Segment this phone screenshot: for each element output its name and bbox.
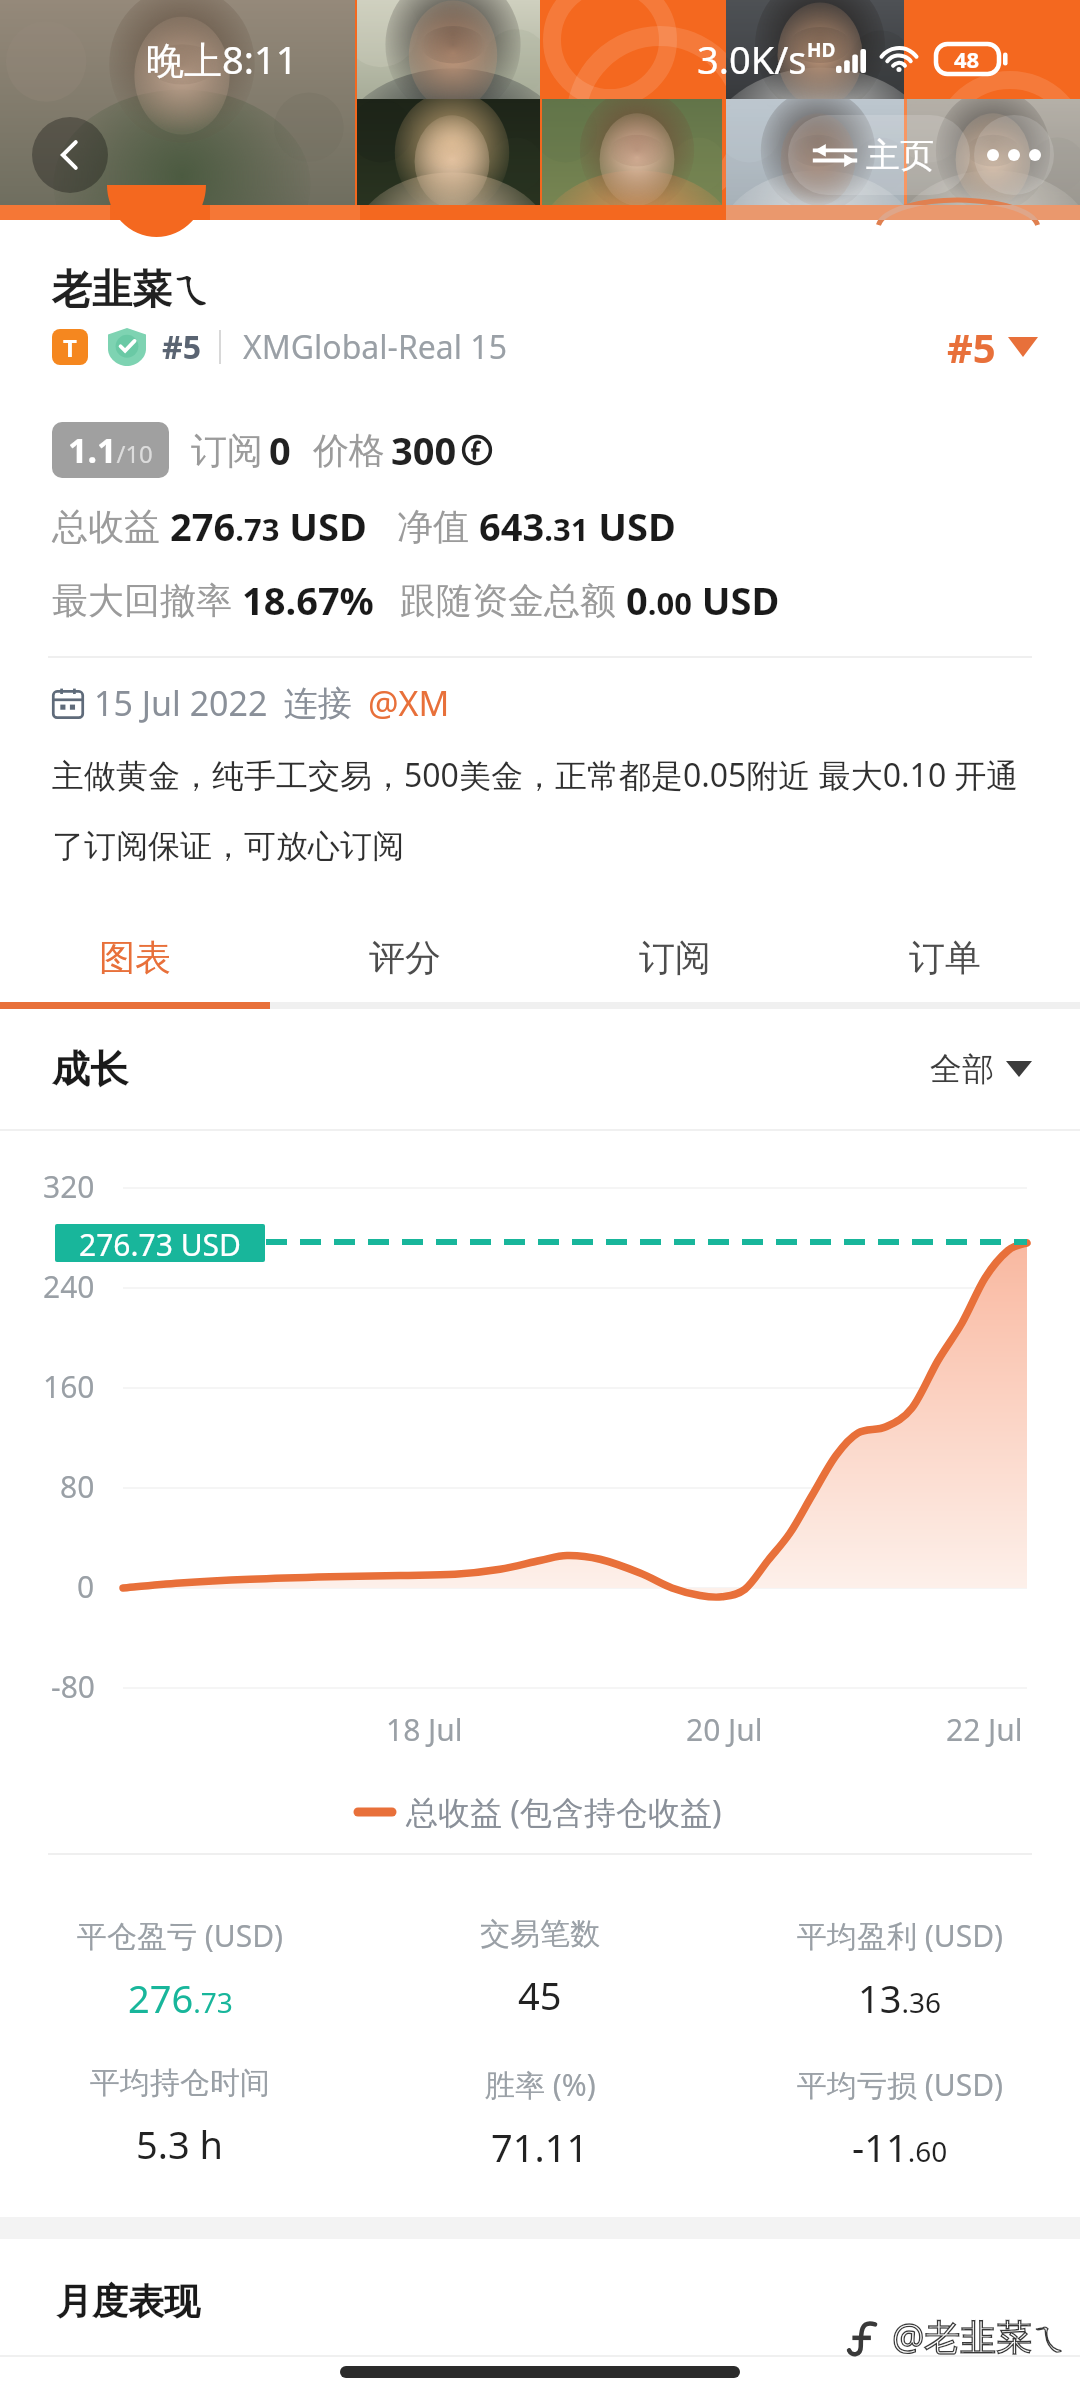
staticText: 平仓盈亏 (USD) bbox=[77, 1915, 284, 1956]
staticText: 13.36 bbox=[858, 1972, 942, 2024]
staticText: 净值 bbox=[397, 504, 469, 549]
staticText: 全部 bbox=[930, 1049, 994, 1089]
staticText: HD bbox=[807, 37, 836, 63]
staticText: @XM bbox=[368, 680, 450, 726]
button[interactable]: 平均盈利 (USD) bbox=[720, 1915, 1080, 2064]
staticText: 1.1/10 bbox=[68, 427, 153, 473]
button[interactable]: 平均持仓时间 bbox=[0, 2064, 360, 2180]
button[interactable]: 平仓盈亏 (USD) bbox=[0, 1915, 360, 2064]
staticText: 平均持仓时间 bbox=[90, 2064, 270, 2102]
staticText: 300 bbox=[391, 424, 457, 476]
staticText: 320 bbox=[43, 1166, 95, 1207]
staticText: 连接 bbox=[284, 682, 352, 725]
staticText: 评分 bbox=[369, 935, 441, 980]
staticText: 月度表现 bbox=[56, 2279, 200, 2324]
staticText: T bbox=[63, 331, 77, 364]
staticText: 晚上8:11 bbox=[146, 33, 298, 85]
button[interactable]: 胜率 (%) bbox=[360, 2064, 720, 2180]
staticText: 160 bbox=[43, 1366, 95, 1407]
staticText: 80 bbox=[60, 1466, 95, 1507]
staticText: 276.73 USD bbox=[170, 500, 367, 552]
button[interactable]: 评分 bbox=[270, 890, 540, 1002]
staticText: 20 Jul bbox=[686, 1709, 763, 1750]
staticText: 价格 bbox=[313, 428, 385, 473]
button[interactable]: #5 bbox=[931, 320, 1038, 374]
button[interactable]: More options bbox=[974, 115, 1054, 195]
staticText: 跟随资金总额 bbox=[400, 578, 616, 623]
staticText: 交易笔数 bbox=[480, 1915, 600, 1953]
staticText: -80 bbox=[51, 1666, 95, 1707]
staticText: 45 bbox=[518, 1969, 562, 2021]
button[interactable]: 图表 bbox=[0, 890, 270, 1002]
staticText: -11.60 bbox=[852, 2121, 948, 2173]
staticText: 胜率 (%) bbox=[485, 2064, 596, 2105]
staticText: XMGlobal-Real 15 bbox=[243, 325, 507, 369]
staticText: 71.11 bbox=[491, 2121, 589, 2173]
staticText: 老韭菜ㄟ bbox=[52, 264, 213, 314]
staticText: #5 bbox=[162, 325, 201, 369]
staticText: 276.73 USD bbox=[79, 1224, 241, 1262]
staticText: 22 Jul bbox=[946, 1709, 1023, 1750]
staticText: 最大回撤率 bbox=[52, 578, 232, 623]
staticText: 0 bbox=[77, 1566, 95, 1607]
staticText: #5 bbox=[947, 320, 996, 374]
button[interactable]: 交易笔数 bbox=[360, 1915, 720, 2064]
staticText: 平均亏损 (USD) bbox=[797, 2064, 1004, 2105]
button[interactable]: 平均亏损 (USD) bbox=[720, 2064, 1080, 2180]
button[interactable]: 订单 bbox=[810, 890, 1080, 1002]
staticText: 订阅 bbox=[191, 428, 263, 473]
staticText: 5.3 h bbox=[136, 2118, 224, 2170]
staticText: 15 Jul 2022 bbox=[94, 680, 268, 726]
staticText: 图表 bbox=[99, 935, 171, 980]
staticText: 平均盈利 (USD) bbox=[797, 1915, 1004, 1956]
staticText: 订阅 bbox=[639, 935, 711, 980]
staticText: 总收益 bbox=[52, 504, 160, 549]
staticText: 成长 bbox=[52, 1045, 128, 1093]
staticText: 48 bbox=[954, 44, 980, 74]
staticText: 3.0K/s bbox=[697, 33, 807, 85]
button[interactable]: 全部 bbox=[924, 1049, 1038, 1089]
staticText: 订单 bbox=[909, 935, 981, 980]
button[interactable]: 订阅 bbox=[540, 890, 810, 1002]
staticText: @老韭菜ㄟ bbox=[892, 2312, 1069, 2361]
staticText: 总收益 (包含持仓收益) bbox=[406, 1790, 722, 1834]
staticText: 240 bbox=[43, 1266, 95, 1307]
staticText: 主页 bbox=[866, 134, 934, 177]
staticText: 276.73 bbox=[128, 1972, 233, 2024]
staticText: 18.67% bbox=[242, 574, 374, 626]
button[interactable]: Back bbox=[32, 117, 108, 193]
staticText: 0.00 USD bbox=[626, 574, 780, 626]
button[interactable]: 主页 bbox=[788, 115, 970, 195]
staticText: 18 Jul bbox=[386, 1709, 463, 1750]
staticText: 0 bbox=[269, 424, 291, 476]
staticText: 643.31 USD bbox=[479, 500, 676, 552]
staticText: 主做黄金，纯手工交易，500美金，正常都是0.05附近 最大0.10 开通了订阅… bbox=[52, 753, 1046, 867]
